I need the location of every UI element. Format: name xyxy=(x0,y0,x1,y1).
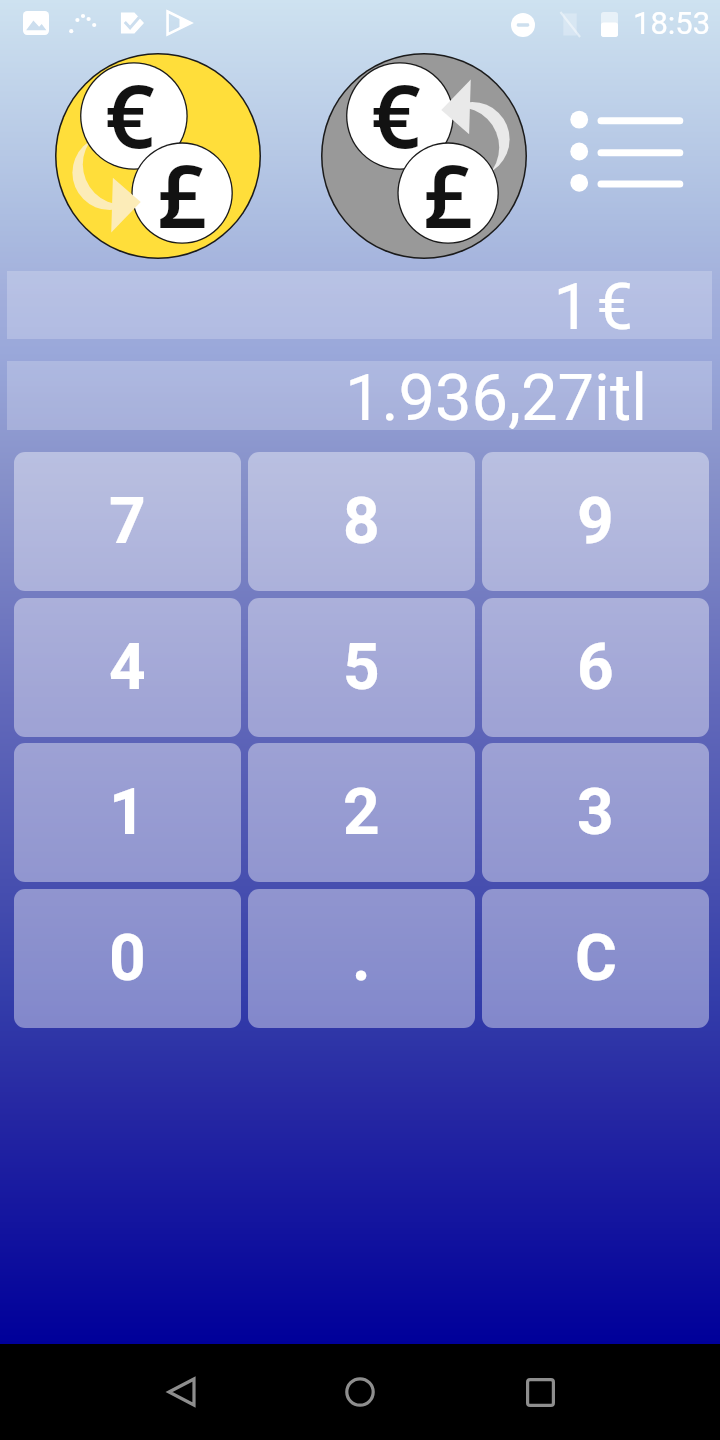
button[interactable]: 0 xyxy=(14,889,241,1028)
button[interactable]: 9 xyxy=(482,452,709,591)
button[interactable]: 8 xyxy=(248,452,475,591)
staticText: 1 xyxy=(553,269,590,337)
staticText: 3 xyxy=(577,775,614,850)
staticText: C xyxy=(575,921,617,996)
staticText: € xyxy=(596,269,633,337)
button[interactable]: 2 xyxy=(248,743,475,882)
staticText: 1.936,27 xyxy=(344,360,594,429)
staticText: 1 xyxy=(109,775,146,850)
button[interactable]: Recent apps xyxy=(492,1344,588,1440)
staticText: itl xyxy=(594,360,647,429)
button[interactable]: 4 xyxy=(14,598,241,737)
staticText: 0 xyxy=(109,921,146,996)
button[interactable]: Convert pound to euro xyxy=(321,53,527,259)
staticText: . xyxy=(352,921,371,996)
staticText: 8 xyxy=(343,484,380,559)
button[interactable]: Convert euro to pound xyxy=(55,53,261,259)
button[interactable]: 5 xyxy=(248,598,475,737)
button[interactable]: C xyxy=(482,889,709,1028)
staticText: 2 xyxy=(343,775,380,850)
staticText: € xyxy=(371,55,421,173)
button[interactable]: Back xyxy=(133,1344,229,1440)
staticText: £ xyxy=(423,135,473,253)
staticText: 9 xyxy=(577,484,614,559)
staticText: 6 xyxy=(577,630,614,705)
staticText: 7 xyxy=(109,484,146,559)
button[interactable]: 1.936,27 xyxy=(7,361,712,430)
staticText: 18:53 xyxy=(633,5,711,41)
staticText: 5 xyxy=(343,630,380,705)
button[interactable]: 3 xyxy=(482,743,709,882)
button[interactable]: Home xyxy=(312,1344,408,1440)
button[interactable]: 1 xyxy=(7,271,712,339)
button[interactable]: 7 xyxy=(14,452,241,591)
button[interactable]: . xyxy=(248,889,475,1028)
button[interactable]: Currency list xyxy=(556,100,700,208)
staticText: £ xyxy=(157,135,207,253)
staticText: 4 xyxy=(109,630,146,705)
button[interactable]: 1 xyxy=(14,743,241,882)
button[interactable]: 6 xyxy=(482,598,709,737)
staticText: € xyxy=(105,55,155,173)
